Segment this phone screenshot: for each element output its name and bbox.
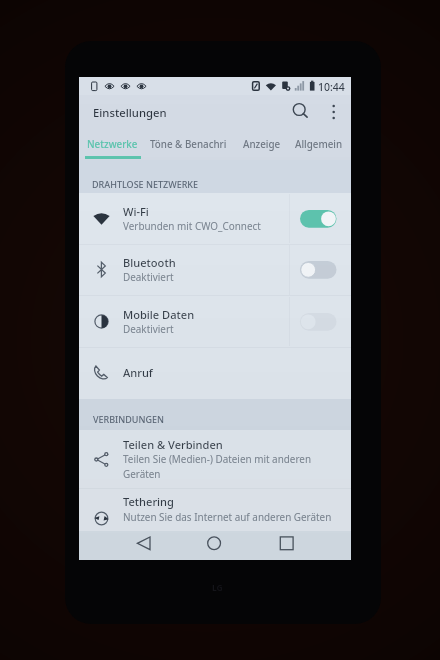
button[interactable]: Teilen & Verbinden (79, 430, 351, 488)
button[interactable]: Anzeige (237, 137, 286, 160)
button[interactable]: Bluetooth (300, 261, 337, 279)
staticText: Einstellungen (93, 105, 167, 120)
button[interactable]: Letzte Apps (269, 531, 305, 558)
staticText: Deaktiviert (123, 322, 174, 335)
button[interactable]: Startbildschirm (196, 531, 232, 558)
staticText: Anzeige (243, 138, 281, 151)
staticText: Verbunden mit CWO_Connect (123, 219, 261, 232)
staticText: Tethering (123, 494, 174, 509)
staticText: Anruf (123, 365, 153, 380)
button[interactable]: Allgemein (289, 137, 347, 160)
staticText: Teilen & Verbinden (123, 437, 223, 452)
staticText: VERBINDUNGEN (93, 413, 165, 425)
button[interactable]: Anruf (79, 347, 351, 398)
staticText: Bluetooth (123, 255, 176, 270)
button[interactable]: Bluetooth (79, 244, 351, 296)
button[interactable]: Tethering (79, 488, 351, 531)
staticText: Wi-Fi (123, 204, 149, 219)
staticText: Nutzen Sie das Internet auf anderen Gerä… (123, 510, 332, 523)
staticText: 10:44 (318, 80, 345, 94)
staticText: Netzwerke (87, 138, 138, 151)
button[interactable]: Zurück (126, 531, 162, 558)
staticText: DRAHTLOSE NETZWERKE (92, 178, 199, 190)
staticText: Allgemein (295, 138, 343, 151)
staticText: Geräten (123, 467, 161, 480)
staticText: Töne & Benachrichtigungen (150, 138, 227, 151)
button[interactable]: Mobile Daten (300, 313, 337, 331)
button[interactable]: Suchen (286, 96, 313, 128)
button[interactable]: Wi-Fi (300, 210, 337, 228)
button[interactable]: Töne & Benachrichtigungen (146, 137, 227, 160)
button[interactable]: Mobile Daten (79, 296, 351, 347)
staticText: Deaktiviert (123, 270, 174, 283)
staticText: Mobile Daten (123, 307, 195, 322)
staticText: Teilen Sie (Medien-) Dateien mit anderen (123, 452, 312, 465)
button[interactable]: Wi-Fi (79, 193, 351, 244)
staticText: LG (212, 582, 223, 594)
button[interactable]: Weitere Optionen (322, 96, 346, 128)
button[interactable]: Netzwerke (83, 137, 144, 160)
